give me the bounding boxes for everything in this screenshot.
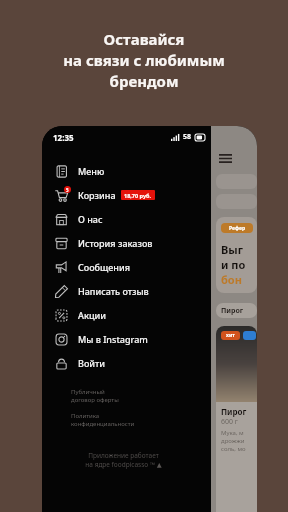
button[interactable]: Open menu <box>219 152 232 165</box>
staticText: Меню <box>78 165 105 177</box>
staticText: 18,70 руб. <box>124 192 152 199</box>
staticText: О нас <box>78 213 103 225</box>
button[interactable]: Меню <box>42 159 211 183</box>
button[interactable]: 5 <box>42 183 211 207</box>
staticText: Войти <box>78 357 106 369</box>
button[interactable]: Мы в Instagram <box>42 327 211 351</box>
staticText: Корзина <box>78 189 116 201</box>
staticText: 58 <box>183 132 192 142</box>
staticText: Мука, м дрожжи соль, мо <box>221 429 246 453</box>
staticText: хит <box>226 332 235 339</box>
button[interactable]: хит <box>216 326 257 512</box>
staticText: Приложение работает на ядре foodpicasso … <box>42 451 205 469</box>
staticText: Пирог <box>221 306 244 316</box>
staticText: Мы в Instagram <box>78 333 148 345</box>
staticText: бон <box>221 272 242 287</box>
button[interactable]: Войти <box>42 351 211 375</box>
staticText: 600 г <box>221 417 238 427</box>
button[interactable]: Сообщения <box>42 255 211 279</box>
button[interactable]: Политика конфиденциальности <box>71 412 135 428</box>
staticText: История заказов <box>78 237 153 249</box>
staticText: Написать отзыв <box>78 285 149 297</box>
staticText: Рефер <box>229 225 246 232</box>
staticText: 12:35 <box>53 132 74 143</box>
button[interactable]: Пирог <box>216 303 257 318</box>
staticText: Оставайся на связи с любимым брендом <box>63 29 225 92</box>
button[interactable]: Написать отзыв <box>42 279 211 303</box>
button[interactable]: О нас <box>42 207 211 231</box>
staticText: 5 <box>66 187 69 193</box>
staticText: Пирог <box>221 406 247 417</box>
staticText: Сообщения <box>78 261 130 273</box>
staticText: Акции <box>78 309 106 321</box>
button[interactable]: Публичный договор оферты <box>71 388 119 404</box>
staticText: Выг <box>221 242 243 257</box>
staticText: и по <box>221 257 246 272</box>
button[interactable]: История заказов <box>42 231 211 255</box>
button[interactable]: Акции <box>42 303 211 327</box>
